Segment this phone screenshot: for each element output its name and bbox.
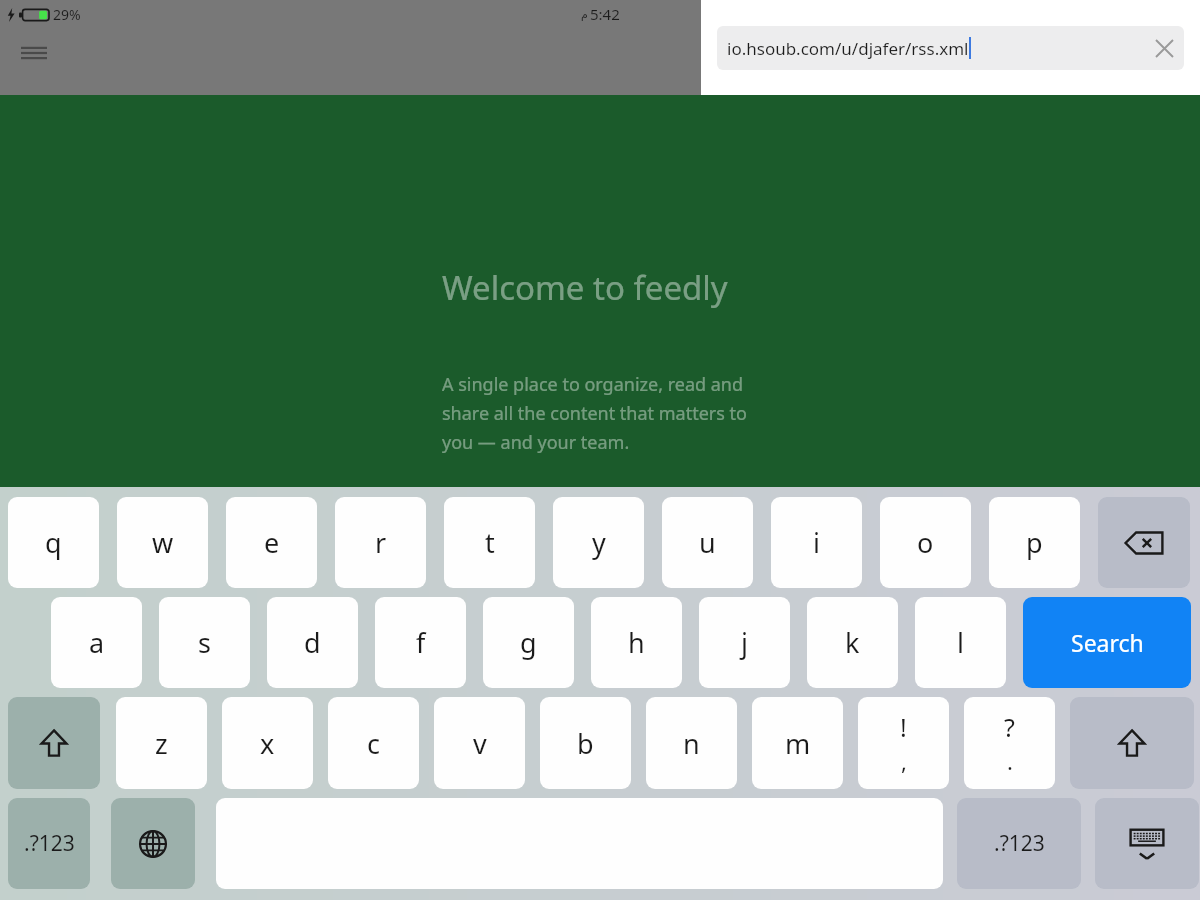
staticText: . — [1007, 746, 1013, 776]
button[interactable]: a — [51, 597, 142, 688]
button[interactable]: t — [444, 497, 535, 588]
staticText: n — [683, 725, 700, 762]
button[interactable]: b — [540, 697, 631, 789]
button[interactable]: c — [328, 697, 419, 789]
staticText: Welcome to feedly — [442, 265, 728, 310]
staticText: , — [901, 746, 907, 776]
staticText: h — [628, 624, 645, 661]
button[interactable]: f — [375, 597, 466, 688]
staticText: .?123 — [994, 829, 1045, 858]
staticText: f — [416, 624, 426, 661]
staticText: ! — [900, 710, 907, 744]
button[interactable]: e — [226, 497, 317, 588]
button[interactable]: ? — [964, 697, 1055, 789]
button[interactable]: Change language — [111, 798, 195, 889]
button[interactable]: .?123 — [957, 798, 1081, 889]
button[interactable]: u — [662, 497, 753, 588]
button[interactable]: k — [807, 597, 898, 688]
button[interactable]: m — [752, 697, 843, 789]
button[interactable]: h — [591, 597, 682, 688]
staticText: s — [198, 624, 211, 661]
staticText: u — [699, 524, 716, 561]
staticText: i — [813, 524, 820, 561]
staticText: ? — [1004, 710, 1015, 744]
staticText: r — [375, 524, 387, 561]
button[interactable]: Hide keyboard — [1095, 798, 1199, 889]
staticText: j — [741, 624, 748, 661]
staticText: e — [264, 524, 280, 561]
staticText: x — [260, 725, 275, 762]
staticText: y — [592, 524, 606, 561]
button[interactable]: y — [553, 497, 644, 588]
button[interactable]: s — [159, 597, 250, 688]
staticText: t — [485, 524, 495, 561]
button[interactable]: Clear — [1144, 28, 1184, 68]
button[interactable]: Shift — [1070, 697, 1194, 789]
button[interactable]: o — [880, 497, 971, 588]
staticText: .?123 — [24, 829, 75, 858]
button[interactable]: n — [646, 697, 737, 789]
button[interactable]: z — [116, 697, 207, 789]
staticText: q — [45, 524, 62, 561]
button[interactable]: Backspace — [1098, 497, 1190, 588]
button[interactable]: io.hsoub.com/u/djafer/rss.xml — [717, 26, 1184, 70]
staticText: 5:42 — [590, 4, 620, 24]
button[interactable]: v — [434, 697, 525, 789]
staticText: a — [89, 624, 105, 661]
button[interactable]: x — [222, 697, 313, 789]
staticText: Search — [1071, 627, 1144, 658]
button[interactable]: g — [483, 597, 574, 688]
staticText: p — [1026, 524, 1043, 561]
button[interactable]: Shift — [8, 697, 100, 789]
button[interactable]: j — [699, 597, 790, 688]
staticText: l — [957, 624, 964, 661]
staticText: d — [304, 624, 321, 661]
staticText: k — [845, 624, 860, 661]
button[interactable]: i — [771, 497, 862, 588]
staticText: m — [785, 725, 811, 762]
button[interactable]: p — [989, 497, 1080, 588]
staticText: b — [577, 725, 594, 762]
button[interactable]: ! — [858, 697, 949, 789]
staticText: w — [152, 524, 174, 561]
staticText: 29% — [53, 5, 81, 24]
staticText: c — [367, 725, 380, 762]
staticText: z — [155, 725, 168, 762]
staticText: A single place to organize, read and sha… — [442, 372, 747, 454]
button[interactable]: w — [117, 497, 208, 588]
button[interactable]: r — [335, 497, 426, 588]
staticText: م — [581, 8, 588, 21]
button[interactable]: q — [8, 497, 99, 588]
staticText: v — [473, 725, 487, 762]
button[interactable]: d — [267, 597, 358, 688]
button[interactable]: Search — [1023, 597, 1191, 688]
staticText: g — [520, 624, 537, 661]
staticText: o — [917, 524, 934, 561]
button[interactable]: .?123 — [8, 798, 90, 889]
button[interactable]: l — [915, 597, 1006, 688]
button[interactable]: Menu — [14, 33, 54, 73]
staticText: io.hsoub.com/u/djafer/rss.xml — [727, 37, 969, 60]
